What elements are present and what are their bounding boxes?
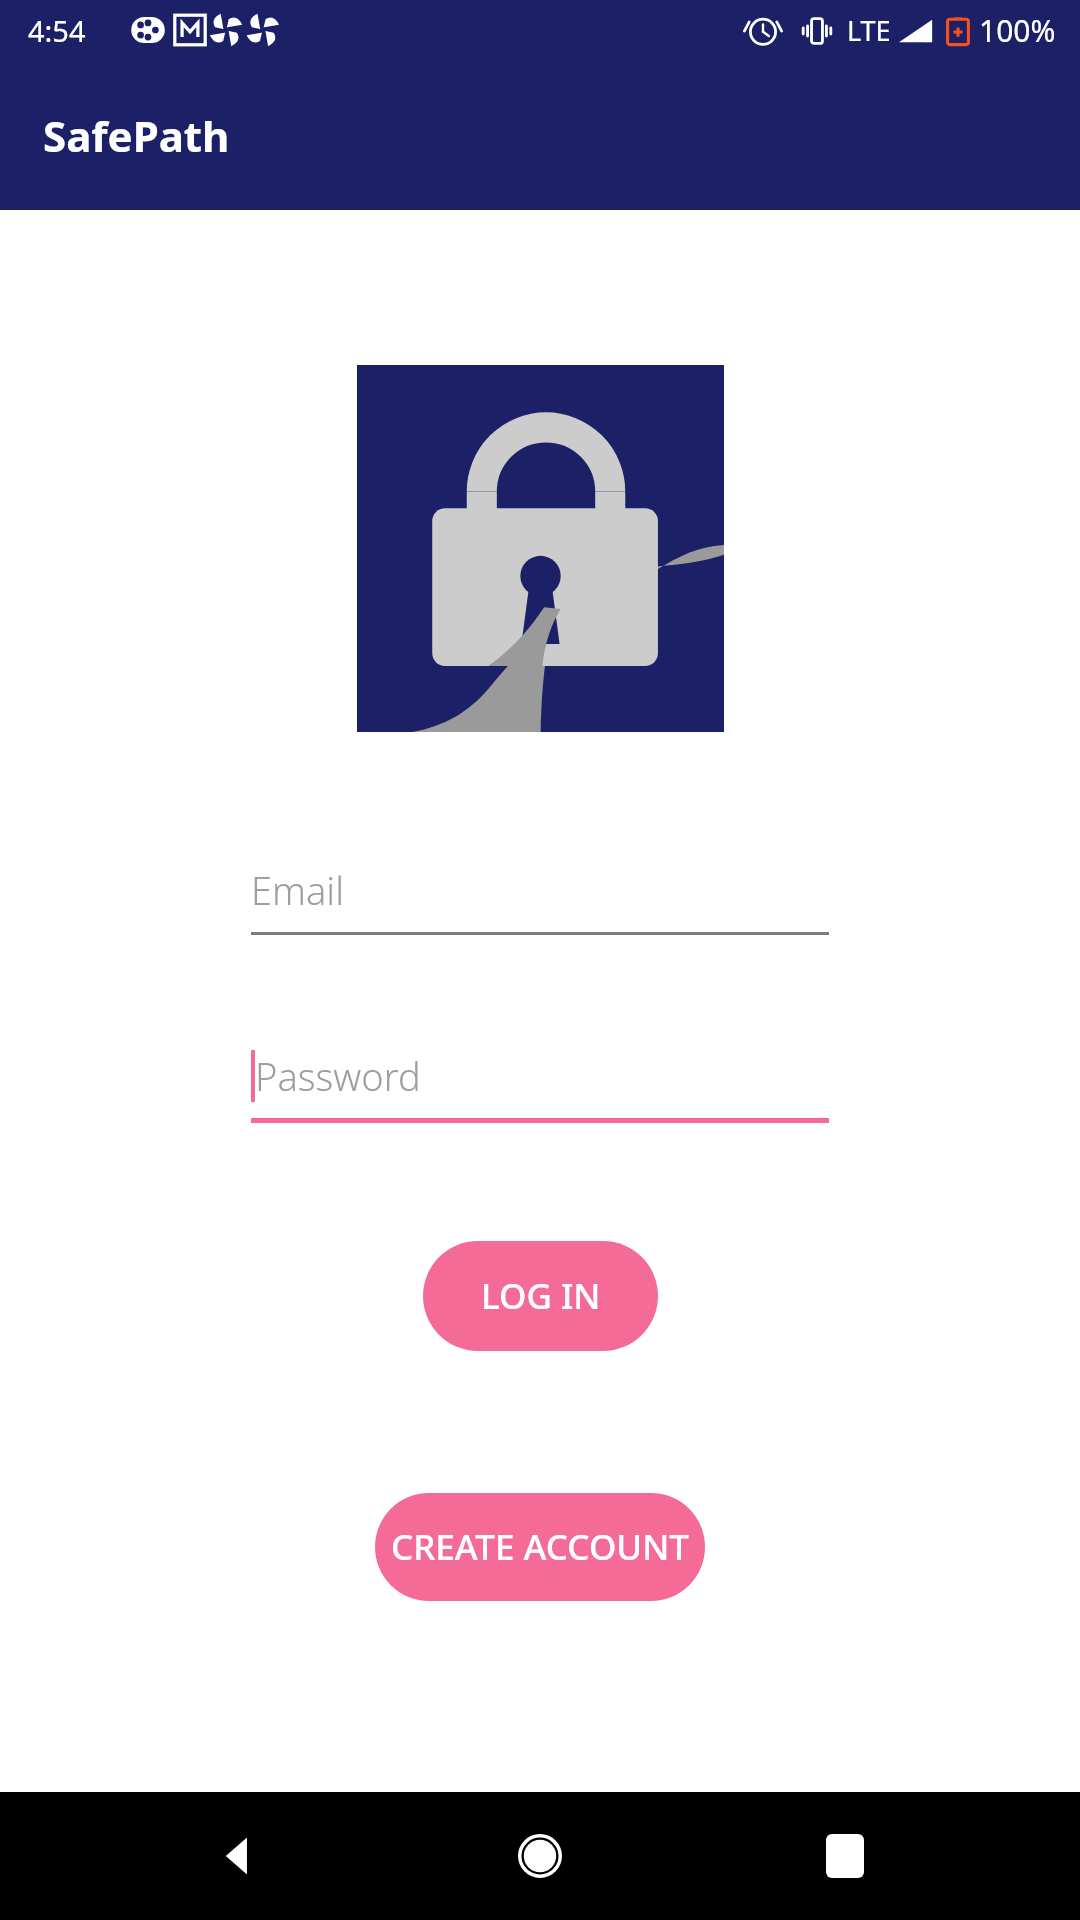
staticText: Password [255,1050,421,1102]
button[interactable]: Back [190,1811,280,1901]
staticText: LTE [847,12,891,49]
staticText: 100% [979,10,1056,51]
staticText: SafePath [43,107,230,164]
button[interactable]: Home [495,1811,585,1901]
staticText: Email [251,864,344,916]
button[interactable]: LOG IN [423,1241,658,1351]
staticText: 4:54 [28,11,86,50]
button[interactable]: Recent apps [800,1811,890,1901]
button[interactable]: CREATE ACCOUNT [375,1493,705,1601]
staticText: LOG IN [481,1272,601,1320]
staticText: CREATE ACCOUNT [391,1523,689,1571]
